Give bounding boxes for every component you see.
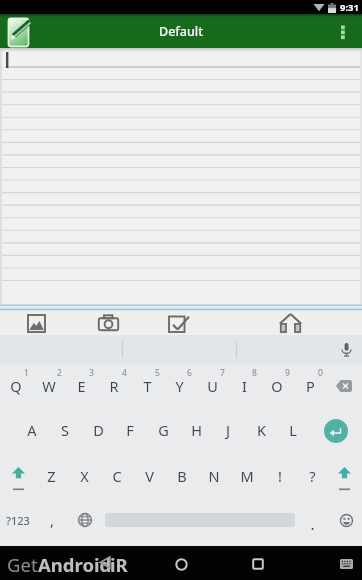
button[interactable] — [90, 547, 120, 577]
button[interactable] — [166, 549, 196, 579]
button[interactable] — [94, 311, 123, 335]
button[interactable] — [4, 17, 34, 48]
staticText: 6 — [187, 367, 192, 378]
button[interactable]: ?123 — [4, 511, 32, 529]
button[interactable]: N — [199, 464, 229, 488]
button[interactable]: W — [34, 374, 64, 398]
staticText: 5 — [155, 367, 160, 378]
button[interactable]: U — [197, 374, 227, 398]
staticText: 2 — [57, 367, 62, 378]
staticText: 1 — [24, 367, 29, 378]
button[interactable] — [333, 507, 359, 533]
button[interactable] — [329, 374, 359, 398]
staticText: A — [27, 420, 37, 440]
button[interactable]: G — [148, 418, 178, 442]
staticText: X — [80, 466, 89, 486]
button[interactable] — [330, 462, 358, 494]
button[interactable] — [72, 507, 98, 533]
button[interactable] — [0, 48, 362, 311]
button[interactable]: R — [99, 374, 129, 398]
button[interactable]: A — [17, 418, 47, 442]
staticText: E — [77, 376, 86, 396]
staticText: J — [226, 420, 230, 440]
button[interactable]: O — [262, 374, 292, 398]
button[interactable] — [333, 337, 359, 363]
staticText: D — [93, 420, 104, 440]
button[interactable] — [324, 419, 348, 443]
staticText: S — [61, 420, 69, 440]
button[interactable]: B — [167, 464, 197, 488]
staticText: U — [207, 376, 218, 396]
staticText: O — [271, 376, 283, 396]
staticText: Default — [159, 23, 203, 40]
staticText: ! — [278, 466, 282, 486]
button[interactable]: C — [102, 464, 132, 488]
button[interactable]: M — [232, 464, 262, 488]
staticText: M — [240, 466, 254, 486]
staticText: iR — [110, 552, 128, 577]
staticText: 9 — [285, 367, 290, 378]
button[interactable]: Z — [36, 464, 66, 488]
button[interactable]: L — [278, 418, 308, 442]
button[interactable]: P — [295, 374, 325, 398]
staticText: 4 — [122, 367, 127, 378]
staticText: B — [177, 466, 187, 486]
staticText: F — [126, 420, 134, 440]
button[interactable] — [331, 20, 357, 46]
button[interactable]: D — [83, 418, 113, 442]
button[interactable]: , — [37, 508, 67, 532]
button[interactable]: H — [181, 418, 211, 442]
button[interactable]: T — [132, 374, 162, 398]
button[interactable]: Y — [164, 374, 194, 398]
staticText: R — [109, 376, 119, 396]
button[interactable] — [22, 311, 51, 335]
button[interactable]: . — [297, 511, 327, 535]
staticText: Y — [175, 376, 184, 396]
staticText: Z — [47, 466, 56, 486]
staticText: ?123 — [6, 513, 30, 528]
staticText: G — [158, 420, 169, 440]
staticText: 8 — [252, 367, 257, 378]
button[interactable]: J — [213, 418, 243, 442]
staticText: P — [306, 376, 315, 396]
staticText: 0 — [318, 367, 323, 378]
staticText: , — [50, 510, 54, 530]
staticText: I — [242, 376, 247, 396]
staticText: T — [143, 376, 152, 396]
button[interactable] — [333, 551, 359, 577]
button[interactable]: E — [66, 374, 96, 398]
button[interactable] — [276, 311, 305, 335]
staticText: V — [145, 466, 154, 486]
button[interactable]: Q — [1, 374, 31, 398]
staticText: . — [310, 513, 315, 534]
staticText: N — [208, 466, 220, 486]
button[interactable]: I — [229, 374, 259, 398]
staticText: Android — [38, 552, 112, 577]
staticText: C — [112, 466, 122, 486]
button[interactable]: S — [50, 418, 80, 442]
staticText: H — [191, 420, 202, 440]
staticText: 3 — [89, 367, 94, 378]
staticText: 9:31 — [340, 1, 359, 14]
button[interactable] — [164, 311, 193, 335]
button[interactable]: ? — [297, 464, 327, 488]
staticText: L — [289, 420, 297, 440]
staticText: Get — [7, 552, 38, 577]
staticText: ? — [309, 466, 316, 486]
staticText: Q — [10, 376, 22, 396]
button[interactable]: F — [115, 418, 145, 442]
staticText: 7 — [220, 367, 225, 378]
staticText: W — [42, 376, 56, 396]
button[interactable]: V — [134, 464, 164, 488]
staticText: K — [257, 420, 266, 440]
button[interactable] — [4, 462, 32, 494]
button[interactable]: ! — [265, 464, 295, 488]
button[interactable]: K — [246, 418, 276, 442]
button[interactable]: X — [69, 464, 99, 488]
button[interactable] — [243, 548, 273, 579]
